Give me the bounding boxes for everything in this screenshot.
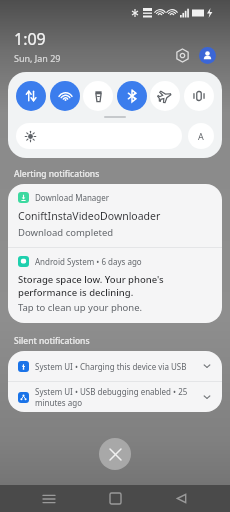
button[interactable]: Back xyxy=(164,485,198,512)
staticText: Android System • 6 days ago xyxy=(35,256,142,267)
staticText: Tap to clean up your phone. xyxy=(18,301,143,314)
button[interactable]: Vibrate xyxy=(184,81,214,111)
button[interactable]: Home xyxy=(98,485,132,512)
button[interactable]: Flashlight xyxy=(83,81,113,111)
staticText: Storage space low. Your phone's performa… xyxy=(18,273,212,299)
button[interactable]: Clear all notifications xyxy=(99,438,131,470)
button[interactable]: Android System • 6 days ago xyxy=(8,248,222,323)
button[interactable]: Brightness xyxy=(16,123,182,149)
button[interactable]: Settings xyxy=(173,46,191,64)
staticText: System UI • USB debugging enabled • 25 m… xyxy=(35,386,202,408)
staticText: ConiftInstaVideoDownloader xyxy=(18,209,161,223)
staticText: Download Manager xyxy=(35,192,110,203)
button[interactable]: System UI • Charging this device via USB xyxy=(8,351,222,381)
staticText: 1:09 xyxy=(14,28,46,50)
button[interactable]: Bluetooth xyxy=(117,81,147,111)
button[interactable]: Account xyxy=(199,47,216,64)
staticText: Download completed xyxy=(18,226,114,239)
button[interactable]: Auto brightness xyxy=(188,123,214,149)
staticText: System UI • Charging this device via USB xyxy=(35,361,187,372)
staticText: Silent notifications xyxy=(14,335,90,347)
staticText: A xyxy=(198,130,204,142)
button[interactable]: System UI • USB debugging enabled • 25 m… xyxy=(8,382,222,412)
button[interactable]: Download Manager xyxy=(8,184,222,247)
button[interactable]: Airplane mode xyxy=(150,81,180,111)
button[interactable]: Recent apps xyxy=(32,485,66,512)
staticText: Alerting notifications xyxy=(14,168,100,180)
staticText: Sun, Jan 29 xyxy=(14,52,61,64)
button[interactable]: Internet xyxy=(16,81,46,111)
button[interactable]: Wi-Fi xyxy=(50,81,80,111)
